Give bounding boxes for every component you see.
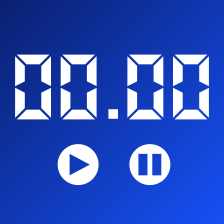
button[interactable]: Pause <box>129 144 170 185</box>
button[interactable]: Start <box>58 144 99 185</box>
